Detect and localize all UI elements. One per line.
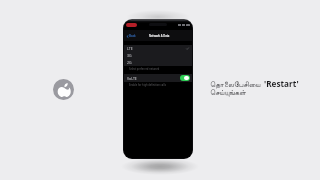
staticText: Select preferred network xyxy=(129,67,160,71)
staticText: LTE xyxy=(127,46,133,51)
staticText: தொலைபேசியை xyxy=(210,81,261,89)
button[interactable]: 3G xyxy=(124,52,192,59)
staticText: Network & Data xyxy=(149,34,170,38)
button[interactable]: Apple xyxy=(53,79,74,100)
button[interactable]: Back xyxy=(126,34,136,38)
button[interactable]: VoLTE xyxy=(124,74,192,82)
staticText: 2G xyxy=(127,60,132,65)
staticText: செய்யுங்கள் xyxy=(210,89,247,97)
staticText: 3G xyxy=(127,53,132,58)
staticText: VoLTE xyxy=(127,76,137,81)
button[interactable]: 2G xyxy=(124,59,192,66)
button[interactable]: LTE xyxy=(124,45,192,52)
staticText: 'Restart' xyxy=(264,78,299,89)
staticText: Enable for high definition calls xyxy=(129,83,166,87)
staticText: Back xyxy=(129,34,136,38)
